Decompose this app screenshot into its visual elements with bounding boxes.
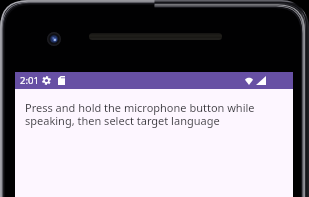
other: Work profile	[58, 76, 65, 85]
staticText: 2:01	[20, 74, 39, 87]
other: Wi-Fi	[245, 77, 253, 85]
button[interactable]: Settings	[42, 76, 51, 85]
button[interactable]: Press and hold the microphone button whi…	[15, 89, 293, 197]
other: Signal	[256, 76, 266, 85]
staticText: Press and hold the microphone button whi…	[25, 100, 267, 128]
